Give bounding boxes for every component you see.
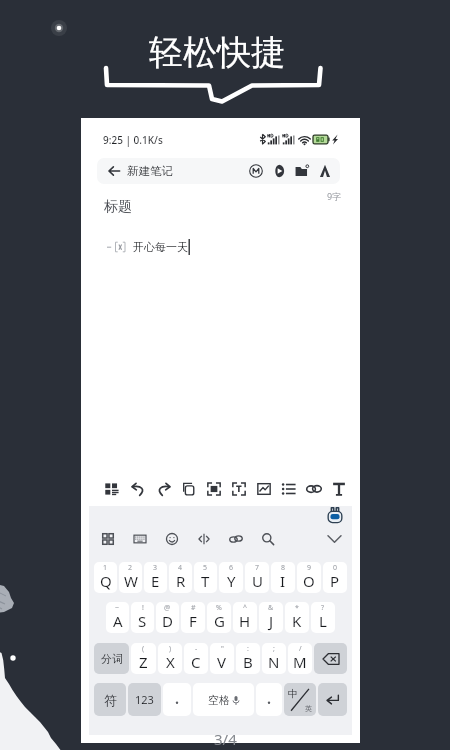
- staticText: &: [268, 603, 274, 613]
- button[interactable]: -: [184, 643, 208, 674]
- button[interactable]: T: [326, 474, 351, 504]
- staticText: 9:25 | 0.1K/s: [103, 133, 163, 147]
- staticText: 2: [128, 563, 133, 573]
- staticText: @: [164, 603, 171, 613]
- staticText: 新建笔记: [127, 164, 173, 178]
- button[interactable]: scan: [201, 474, 226, 504]
- button[interactable]: 1: [94, 562, 117, 593]
- button[interactable]: 更多: [313, 158, 336, 184]
- button[interactable]: apps: [92, 527, 124, 551]
- button[interactable]: ~: [106, 602, 129, 633]
- staticText: Q: [100, 571, 112, 591]
- staticText: 9: [307, 563, 312, 573]
- staticText: (: [142, 644, 145, 654]
- staticText: 8: [281, 563, 286, 573]
- staticText: L: [319, 611, 327, 631]
- button[interactable]: 7: [245, 562, 269, 593]
- staticText: ^: [243, 603, 248, 613]
- button[interactable]: &: [259, 602, 283, 633]
- button[interactable]: [256, 683, 282, 716]
- staticText: E: [151, 571, 160, 591]
- staticText: 7: [255, 563, 260, 573]
- staticText: 分词: [101, 652, 123, 666]
- button[interactable]: !: [131, 602, 154, 633]
- button[interactable]: clip: [220, 527, 252, 551]
- staticText: 123: [135, 692, 154, 707]
- button[interactable]: 3: [144, 562, 167, 593]
- button[interactable]: 2: [119, 562, 142, 593]
- staticText: T: [201, 571, 210, 591]
- staticText: #: [191, 603, 196, 613]
- staticText: -: [195, 644, 198, 654]
- button[interactable]: 9: [297, 562, 321, 593]
- staticText: 3: [153, 563, 158, 573]
- button[interactable]: [163, 683, 191, 716]
- button[interactable]: kb: [124, 527, 156, 551]
- button[interactable]: 8: [271, 562, 295, 593]
- staticText: J: [269, 611, 274, 631]
- button[interactable]: 123: [128, 683, 161, 716]
- button[interactable]: Markdown: [244, 158, 267, 184]
- staticText: *: [295, 603, 299, 613]
- staticText: W: [124, 571, 138, 591]
- button[interactable]: copy: [176, 474, 201, 504]
- button[interactable]: select: [226, 474, 251, 504]
- button[interactable]: 返回: [102, 158, 125, 184]
- button[interactable]: 收起键盘: [321, 527, 347, 551]
- button[interactable]: redo: [151, 474, 176, 504]
- staticText: K: [292, 611, 302, 631]
- staticText: ~: [115, 603, 120, 613]
- staticText: ": [221, 644, 224, 654]
- button[interactable]: /: [288, 643, 312, 674]
- staticText: ): [169, 644, 172, 654]
- button[interactable]: undo: [125, 474, 151, 504]
- button[interactable]: 录音: [267, 158, 290, 184]
- button[interactable]: grid: [99, 474, 125, 504]
- staticText: ;: [273, 644, 275, 654]
- button[interactable]: ": [210, 643, 234, 674]
- staticText: 6: [229, 563, 234, 573]
- button[interactable]: voice: [188, 527, 220, 551]
- button[interactable]: 文件: [290, 158, 313, 184]
- button[interactable]: 中: [284, 683, 316, 716]
- button[interactable]: #: [181, 602, 205, 633]
- staticText: N: [268, 652, 280, 672]
- staticText: %: [216, 603, 222, 613]
- staticText: ?: [321, 603, 325, 613]
- staticText: 3/4: [214, 729, 237, 749]
- button[interactable]: ): [158, 643, 182, 674]
- button[interactable]: emoji: [156, 527, 188, 551]
- button[interactable]: link: [301, 474, 326, 504]
- button[interactable]: 0: [323, 562, 347, 593]
- staticText: 英: [305, 704, 312, 713]
- staticText: 1: [103, 563, 108, 573]
- staticText: /: [299, 644, 302, 654]
- button[interactable]: list: [276, 474, 301, 504]
- button[interactable]: 6: [219, 562, 243, 593]
- button[interactable]: [314, 643, 347, 674]
- button[interactable]: 符: [94, 683, 126, 716]
- button[interactable]: *: [285, 602, 309, 633]
- staticText: I: [280, 571, 286, 591]
- button[interactable]: ^: [233, 602, 257, 633]
- button[interactable]: [318, 683, 347, 716]
- button[interactable]: %: [207, 602, 231, 633]
- button[interactable]: 分词: [94, 643, 129, 674]
- button[interactable]: (: [131, 643, 156, 674]
- button[interactable]: 空格: [193, 683, 254, 716]
- staticText: 符: [104, 692, 117, 708]
- staticText: P: [330, 571, 340, 591]
- staticText: 0: [333, 563, 338, 573]
- staticText: !: [142, 603, 144, 613]
- button[interactable]: :: [236, 643, 260, 674]
- button[interactable]: 5: [194, 562, 217, 593]
- button[interactable]: ?: [311, 602, 335, 633]
- button[interactable]: @: [156, 602, 179, 633]
- staticText: H: [239, 611, 251, 631]
- button[interactable]: search: [252, 527, 284, 551]
- staticText: 空格: [208, 693, 230, 707]
- button[interactable]: 4: [169, 562, 192, 593]
- button[interactable]: ;: [262, 643, 286, 674]
- button[interactable]: image: [251, 474, 276, 504]
- staticText: X: [166, 652, 175, 672]
